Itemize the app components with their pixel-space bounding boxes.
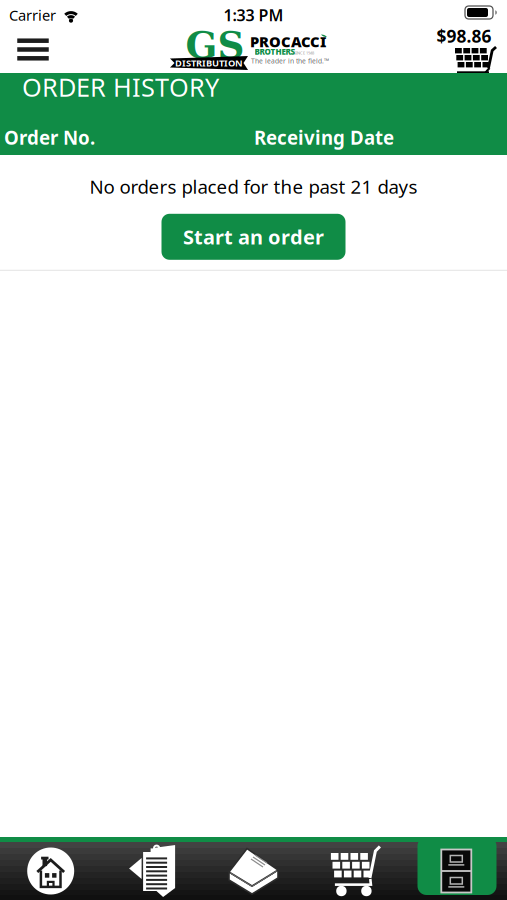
staticText: SINCE 1948	[294, 50, 314, 55]
button[interactable]: Cart	[433, 30, 503, 74]
staticText: GS	[185, 23, 244, 67]
staticText: Receiving Date	[254, 125, 394, 150]
button[interactable]: Home	[0, 842, 101, 900]
staticText: $98.86	[436, 24, 491, 47]
staticText: 1:33 PM	[223, 4, 283, 26]
staticText: Start an order	[183, 223, 324, 250]
button[interactable]: Cart	[304, 842, 406, 900]
button[interactable]: Start an order	[161, 214, 345, 260]
button[interactable]: Order History	[406, 842, 507, 900]
staticText: No orders placed for the past 21 days	[89, 174, 417, 199]
staticText: ORDER HISTORY	[22, 70, 219, 104]
button[interactable]: Order Guide	[101, 842, 203, 900]
button[interactable]: Menu	[9, 31, 57, 67]
staticText: PROCACCI	[250, 32, 326, 51]
staticText: DISTRIBUTION	[175, 57, 243, 69]
staticText: Carrier	[9, 5, 56, 25]
staticText: BROTHERS	[254, 46, 295, 57]
button[interactable]: Catalog	[203, 842, 304, 900]
staticText: The leader in the field.™	[251, 57, 329, 65]
staticText: Order No.	[4, 125, 95, 150]
